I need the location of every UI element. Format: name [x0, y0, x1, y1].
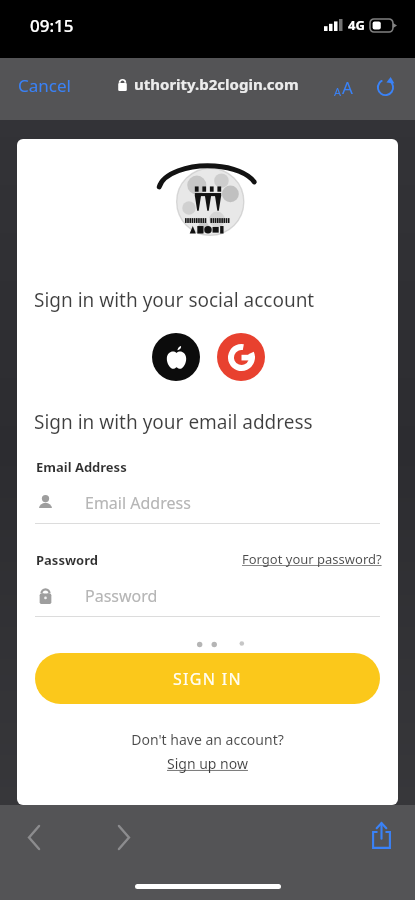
staticText: Sign up now [167, 754, 248, 773]
staticText: Sign in with your email address [34, 409, 313, 435]
button[interactable]: Reload [367, 70, 403, 104]
button[interactable]: Back [12, 815, 56, 859]
staticText: Password [36, 551, 98, 569]
staticText: 09:15 [30, 14, 74, 37]
button[interactable]: Forgot your password? [239, 546, 385, 572]
staticText: A [334, 84, 342, 99]
button[interactable]: Sign up now [161, 751, 254, 776]
button[interactable]: Sign in with Google [217, 333, 265, 381]
staticText: Sign in with your social account [34, 287, 315, 313]
staticText: 4G [348, 16, 365, 34]
staticText: Don't have an account? [131, 730, 284, 749]
staticText: SIGN IN [173, 668, 242, 690]
button[interactable]: Share [359, 813, 403, 857]
button[interactable]: Forward [101, 815, 145, 859]
button[interactable]: Sign in with Apple [152, 333, 200, 381]
staticText: Forgot your password? [242, 550, 382, 568]
button[interactable]: Password [35, 576, 380, 616]
staticText: Email Address [36, 458, 127, 476]
button[interactable]: Cancel [10, 67, 79, 104]
button[interactable]: Email Address [35, 483, 380, 523]
staticText: Cancel [18, 74, 71, 97]
staticText: A [342, 76, 353, 99]
staticText: uthority.b2clogin.com [134, 74, 299, 94]
staticText: Password [85, 585, 158, 607]
button[interactable]: Text size options [324, 70, 362, 104]
button[interactable]: SIGN IN [35, 653, 380, 704]
staticText: Email Address [85, 492, 191, 514]
